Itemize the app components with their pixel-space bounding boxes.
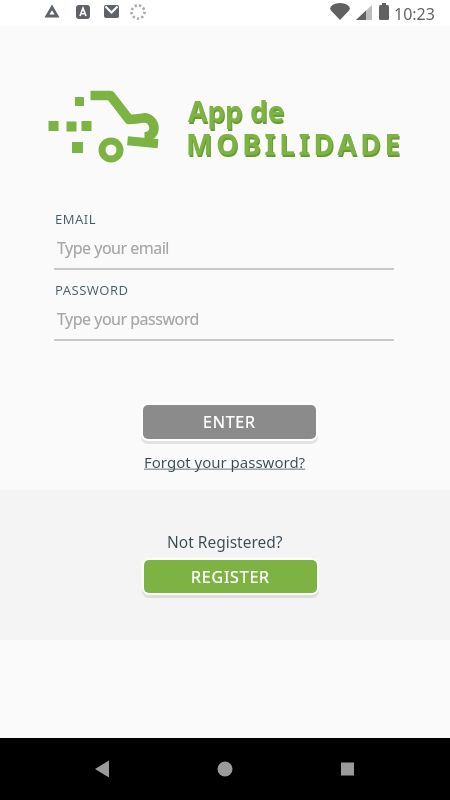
- staticText: EMAIL: [55, 210, 97, 228]
- staticText: App de: [188, 92, 285, 130]
- staticText: Type your password: [57, 308, 199, 330]
- staticText: Not Registered?: [167, 531, 283, 552]
- staticText: ENTER: [203, 411, 256, 433]
- button[interactable]: Forgot your password?: [144, 452, 306, 472]
- staticText: 10:23: [394, 3, 435, 25]
- staticText: PASSWORD: [55, 281, 129, 299]
- staticText: REGISTER: [191, 566, 270, 588]
- button[interactable]: REGISTER: [144, 560, 317, 593]
- staticText: Type your email: [57, 237, 169, 259]
- staticText: MOBILIDADE: [186, 125, 405, 163]
- staticText: MOBILIDADE: [187, 127, 406, 165]
- staticText: App de: [189, 94, 286, 132]
- button[interactable]: ENTER: [143, 405, 316, 439]
